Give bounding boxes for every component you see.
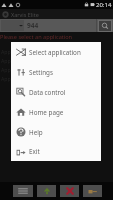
button[interactable]: Accept — [37, 185, 56, 197]
staticText: Home page — [29, 108, 64, 117]
staticText: Please select an application — [0, 33, 73, 41]
button[interactable]: Select application — [11, 42, 101, 62]
button[interactable]: Choose — [1, 20, 24, 31]
button[interactable]: Search — [98, 20, 112, 32]
staticText: Settings — [29, 68, 53, 77]
staticText: Exit — [29, 147, 40, 156]
button[interactable]: Home page — [11, 102, 101, 122]
staticText: 20:14 — [96, 1, 112, 9]
button[interactable]: Data control — [11, 82, 101, 102]
staticText: Application list item — [1, 48, 50, 55]
button[interactable]: Cancel — [60, 185, 79, 197]
staticText: Application list item — [1, 57, 50, 64]
staticText: Xarvis Elite — [11, 11, 39, 18]
staticText: 944 — [27, 21, 39, 30]
staticText: Select application — [29, 48, 81, 57]
button[interactable]: Settings — [11, 62, 101, 82]
button[interactable]: More — [83, 185, 102, 197]
staticText: Help — [29, 128, 43, 137]
button[interactable]: Menu — [13, 185, 33, 197]
button[interactable]: Exit — [11, 142, 101, 161]
staticText: Application list item — [1, 66, 50, 73]
staticText: Application list item — [1, 75, 50, 82]
button[interactable]: 944 — [25, 20, 96, 31]
button[interactable]: Help — [11, 122, 101, 142]
staticText: Data control — [29, 88, 66, 97]
